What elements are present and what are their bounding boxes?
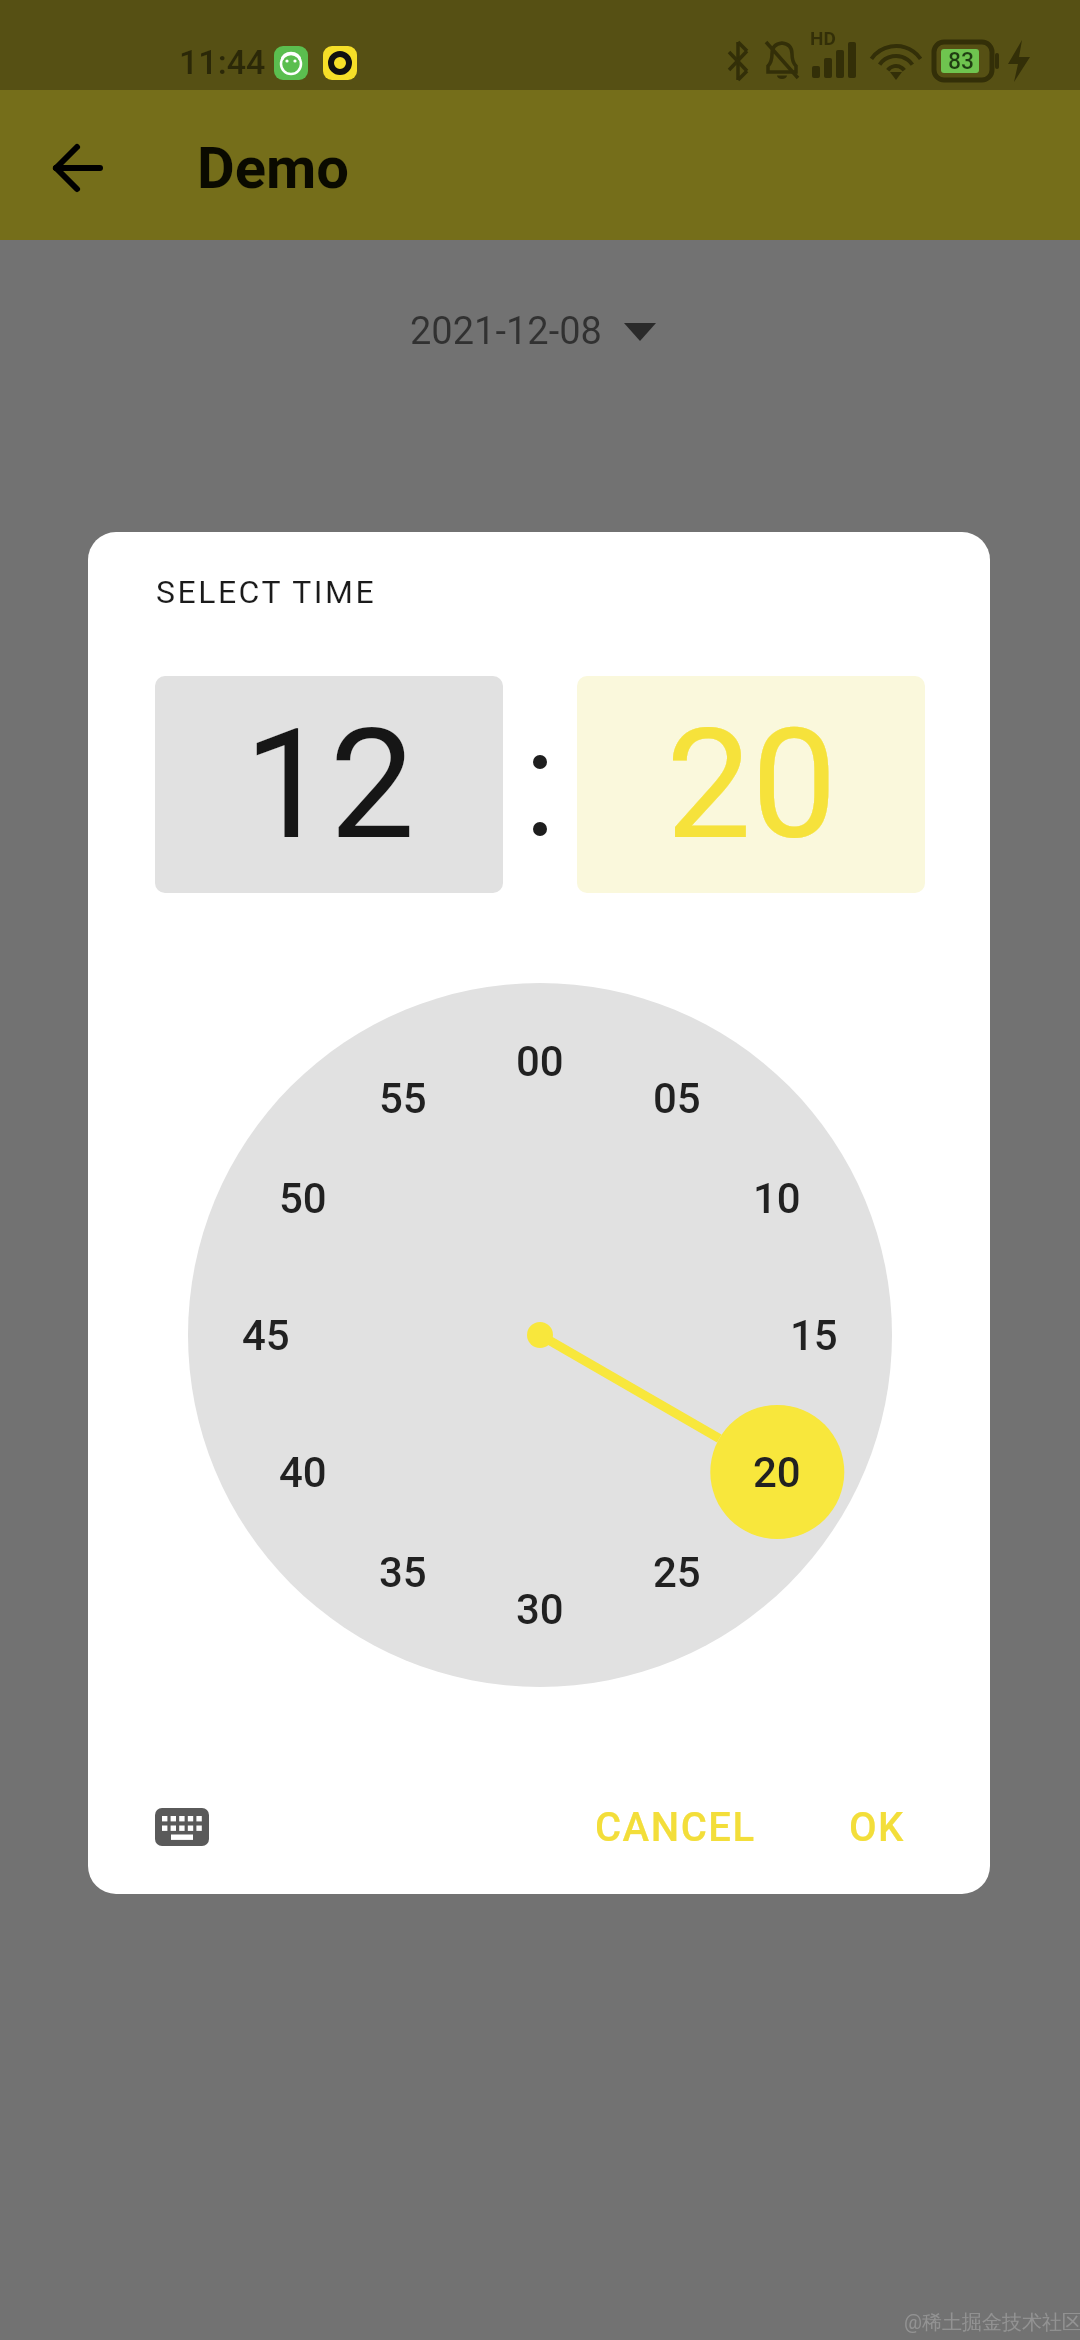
button[interactable]: 12	[155, 676, 503, 893]
staticText: 40	[279, 1448, 327, 1497]
button[interactable]: CANCEL	[525, 1747, 825, 1907]
staticText: SELECT TIME	[156, 573, 377, 611]
staticText: 11:44	[179, 42, 266, 82]
button[interactable]: 50	[153, 1118, 453, 1278]
button[interactable]: 25	[527, 1492, 827, 1652]
staticText: 35	[379, 1548, 427, 1597]
staticText: 55	[379, 1074, 427, 1123]
staticText: 2021-12-08	[410, 309, 602, 354]
button[interactable]: 45	[116, 1255, 416, 1415]
button[interactable]: 20	[627, 1392, 927, 1552]
staticText: 50	[279, 1174, 327, 1223]
button[interactable]	[380, 295, 690, 367]
button[interactable]: 30	[390, 1529, 690, 1689]
staticText: 15	[790, 1311, 838, 1360]
staticText: @稀土掘金技术社区	[904, 2310, 1080, 2335]
staticText: 12	[244, 696, 415, 874]
button[interactable]: OK	[727, 1747, 1027, 1907]
button[interactable]: 20	[577, 676, 925, 893]
staticText: Demo	[197, 134, 350, 202]
staticText: 05	[653, 1074, 701, 1123]
staticText: 00	[516, 1037, 564, 1086]
button[interactable]	[40, 130, 116, 206]
staticText: 83	[948, 48, 975, 75]
button[interactable]: 10	[627, 1118, 927, 1278]
staticText: 10	[753, 1174, 801, 1223]
staticText: 25	[653, 1548, 701, 1597]
staticText: CANCEL	[595, 1804, 756, 1851]
staticText: 20	[753, 1448, 801, 1497]
staticText: 45	[242, 1311, 290, 1360]
staticText: 30	[516, 1585, 564, 1634]
staticText: HD	[810, 27, 836, 49]
button[interactable]: 35	[253, 1492, 553, 1652]
button[interactable]	[143, 1795, 221, 1859]
staticText: 20	[666, 696, 837, 874]
button[interactable]: 55	[253, 1018, 553, 1178]
button[interactable]: 15	[664, 1255, 964, 1415]
button[interactable]: 00	[390, 981, 690, 1141]
button[interactable]: 05	[527, 1018, 827, 1178]
staticText: OK	[849, 1804, 905, 1851]
button[interactable]: 40	[153, 1392, 453, 1552]
